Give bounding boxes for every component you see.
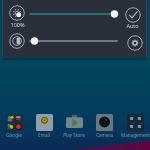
staticText: Camera bbox=[96, 132, 113, 138]
button[interactable]: Reading mode bbox=[9, 33, 25, 49]
staticText: 100% bbox=[5, 21, 30, 28]
button[interactable]: Play Store bbox=[59, 114, 89, 138]
button[interactable]: Settings bbox=[127, 35, 143, 51]
button[interactable]: Email bbox=[29, 114, 59, 138]
staticText: Auto bbox=[121, 22, 144, 29]
button[interactable]: Camera bbox=[89, 114, 119, 138]
staticText: Play Store bbox=[63, 132, 85, 138]
button[interactable]: Management bbox=[120, 114, 150, 138]
staticText: Management bbox=[121, 132, 150, 138]
staticText: Email bbox=[38, 132, 50, 138]
button[interactable]: Auto brightness bbox=[125, 7, 141, 23]
staticText: Google bbox=[6, 132, 22, 138]
button[interactable] bbox=[24, 35, 123, 47]
button[interactable]: Google bbox=[0, 114, 29, 138]
button[interactable] bbox=[24, 8, 123, 20]
button[interactable]: Brightness bbox=[9, 5, 25, 21]
